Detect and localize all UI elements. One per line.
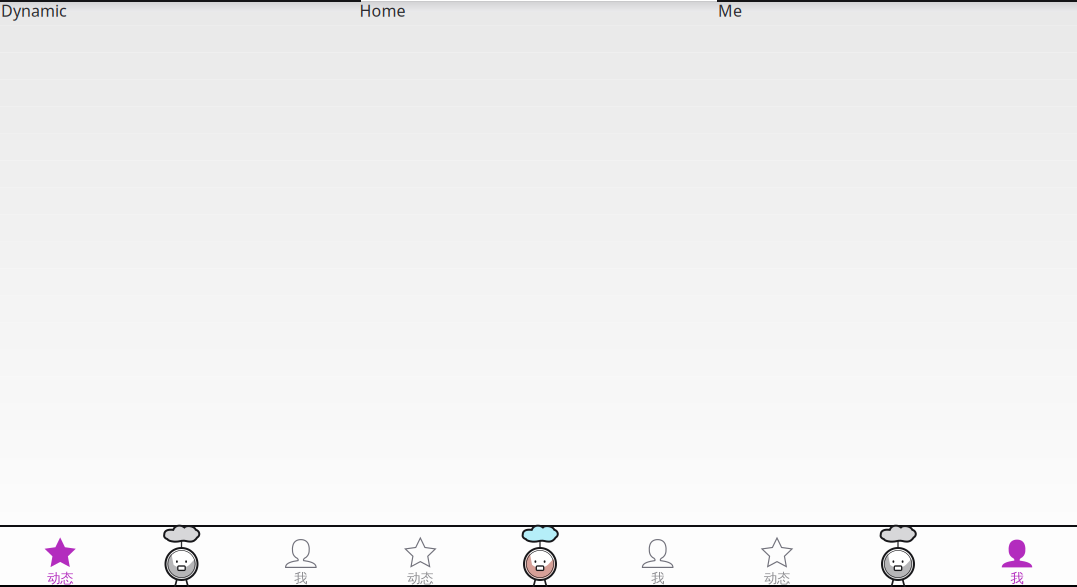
button[interactable]: Home: [480, 523, 598, 585]
staticText: 我: [651, 570, 664, 586]
button[interactable]: 我: [241, 523, 361, 585]
button[interactable]: 动态: [0, 523, 120, 585]
staticText: Dynamic: [1, 0, 67, 21]
button[interactable]: Home: [837, 523, 957, 585]
staticText: 动态: [764, 570, 790, 586]
staticText: 我: [294, 570, 307, 586]
button[interactable]: 我: [598, 523, 717, 585]
staticText: 动态: [407, 570, 433, 586]
button[interactable]: 动态: [361, 523, 480, 585]
button[interactable]: Home: [120, 523, 241, 585]
staticText: Home: [359, 0, 405, 21]
staticText: 动态: [47, 570, 73, 586]
button[interactable]: 动态: [717, 523, 837, 585]
button[interactable]: 我: [957, 523, 1077, 585]
staticText: Me: [718, 0, 742, 21]
staticText: 我: [1010, 570, 1023, 586]
